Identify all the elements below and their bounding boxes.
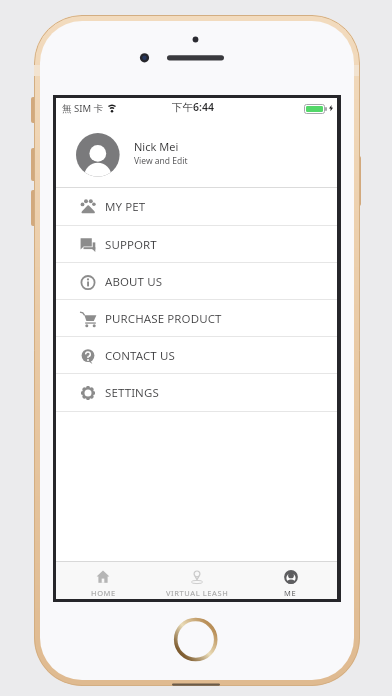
staticText: SUPPORT (105, 237, 157, 253)
button[interactable]: Nick Mei (69, 128, 324, 183)
button[interactable]: VIRTUAL LEASH (150, 562, 244, 599)
button[interactable]: SETTINGS (56, 373, 337, 410)
staticText: PURCHASE PRODUCT (105, 311, 222, 327)
button[interactable]: ME (244, 562, 337, 599)
staticText: CONTACT US (105, 348, 175, 364)
staticText: MY PET (105, 199, 146, 215)
staticText: ME (284, 588, 297, 598)
staticText: SETTINGS (105, 385, 159, 401)
staticText: 下午6:44 (172, 100, 214, 114)
button[interactable]: HOME (56, 562, 150, 599)
button[interactable]: ABOUT US (56, 262, 337, 299)
button[interactable]: CONTACT US (56, 336, 337, 373)
button[interactable]: PURCHASE PRODUCT (56, 299, 337, 336)
staticText: 無 SIM 卡 (62, 102, 103, 115)
button[interactable]: SUPPORT (56, 225, 337, 262)
staticText: ABOUT US (105, 274, 163, 290)
staticText: HOME (91, 588, 116, 598)
staticText: VIRTUAL LEASH (166, 588, 229, 598)
staticText: Nick Mei (134, 139, 179, 154)
button[interactable]: MY PET (56, 187, 337, 224)
staticText: View and Edit (134, 155, 188, 167)
